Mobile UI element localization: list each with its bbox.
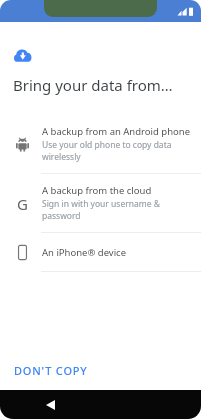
staticText: A backup from an Android phone — [42, 125, 191, 138]
staticText: G — [17, 194, 28, 212]
button[interactable]: A backup from an Android phone — [0, 115, 201, 173]
button[interactable]: G — [0, 174, 201, 232]
staticText: Sign in with your username & password — [42, 198, 160, 222]
staticText: DON'T COPY — [14, 363, 88, 378]
button[interactable]: An iPhone® device — [0, 233, 201, 271]
staticText: Use your old phone to copy data wireless… — [42, 139, 172, 163]
staticText: Bring your data from… — [13, 75, 173, 95]
button[interactable]: Back — [40, 395, 60, 415]
staticText: A backup from the cloud — [42, 184, 152, 197]
staticText: An iPhone® device — [42, 246, 127, 259]
button[interactable]: DON'T COPY — [8, 357, 94, 384]
